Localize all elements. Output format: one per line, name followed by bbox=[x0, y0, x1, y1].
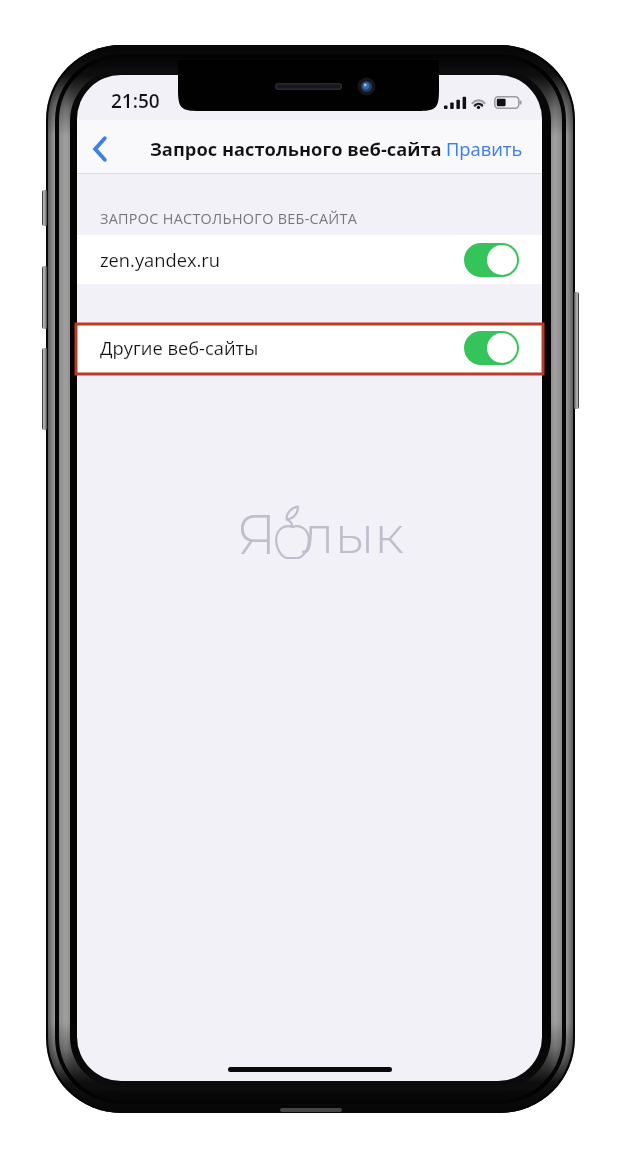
staticText: zen.yandex.ru bbox=[100, 247, 220, 272]
staticText: лык bbox=[302, 503, 404, 559]
staticText: Править bbox=[446, 136, 523, 161]
staticText: Запрос настольного веб-сайта bbox=[150, 136, 442, 161]
staticText: 21:50 bbox=[111, 88, 160, 114]
button[interactable]: zen.yandex.ru bbox=[77, 235, 542, 284]
button[interactable]: Back bbox=[77, 122, 123, 172]
button[interactable]: Другие веб-сайты bbox=[77, 323, 542, 372]
button[interactable]: Править bbox=[446, 135, 523, 160]
button[interactable]: Toggle bbox=[464, 243, 519, 277]
button[interactable]: Toggle bbox=[464, 331, 519, 365]
staticText: Я bbox=[237, 502, 277, 558]
staticText: Другие веб-сайты bbox=[100, 335, 259, 360]
staticText: ЗАПРОС НАСТОЛЬНОГО ВЕБ-САЙТА bbox=[100, 209, 358, 229]
